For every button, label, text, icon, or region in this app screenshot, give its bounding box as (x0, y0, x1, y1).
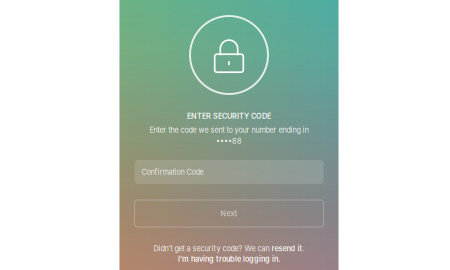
staticText: ENTER SECURITY CODE (187, 112, 271, 120)
staticText: Next (220, 209, 237, 218)
button[interactable]: I'm having trouble logging in. (178, 255, 280, 263)
staticText: Enter the code we sent to your number en… (149, 126, 308, 134)
staticText: Confirmation Code (141, 168, 203, 176)
button[interactable]: Next (134, 200, 323, 227)
staticText: ••••88 (216, 137, 242, 145)
staticText: Didn't get a security code? We can resen… (153, 244, 304, 253)
button[interactable]: Didn't get a security code? We can resen… (153, 244, 304, 253)
staticText: I'm having trouble logging in. (178, 255, 280, 263)
button[interactable]: Confirmation Code (134, 160, 323, 184)
